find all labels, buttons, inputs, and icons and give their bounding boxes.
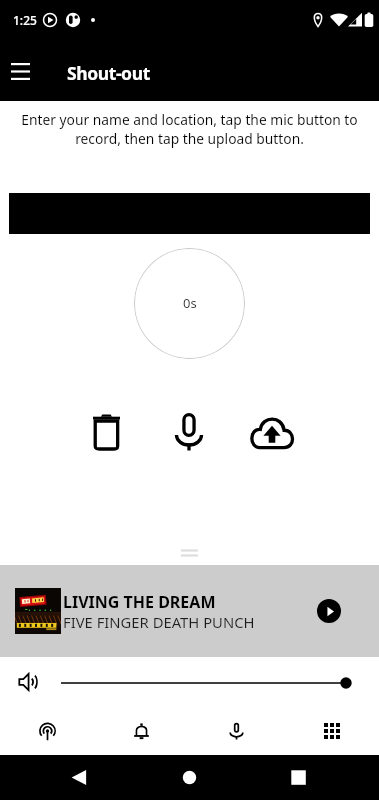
button[interactable]: Delete recording [84,410,128,454]
button[interactable]: LIVING THE DREAM [0,565,379,657]
other: System navigation [0,755,379,800]
staticText: Enter your name and location, tap the mi… [12,110,367,148]
button[interactable]: Record [167,410,211,454]
staticText: 0s [183,294,197,312]
button[interactable]: Broadcast [0,706,94,754]
button[interactable]: Apps [284,706,379,754]
button[interactable]: Menu [0,51,41,92]
button[interactable]: Play [317,599,341,623]
staticText: LIVING THE DREAM [63,591,216,613]
staticText: Shout-out [67,61,150,85]
button[interactable]: Upload [250,410,294,454]
button[interactable] [55,671,360,695]
button[interactable]: Notifications [94,706,189,754]
button[interactable]: 0s [134,248,245,359]
other: Volume [18,671,40,693]
staticText: FIVE FINGER DEATH PUNCH [63,612,255,632]
staticText: 1:25 [13,12,37,28]
button[interactable]: Record [189,706,284,754]
